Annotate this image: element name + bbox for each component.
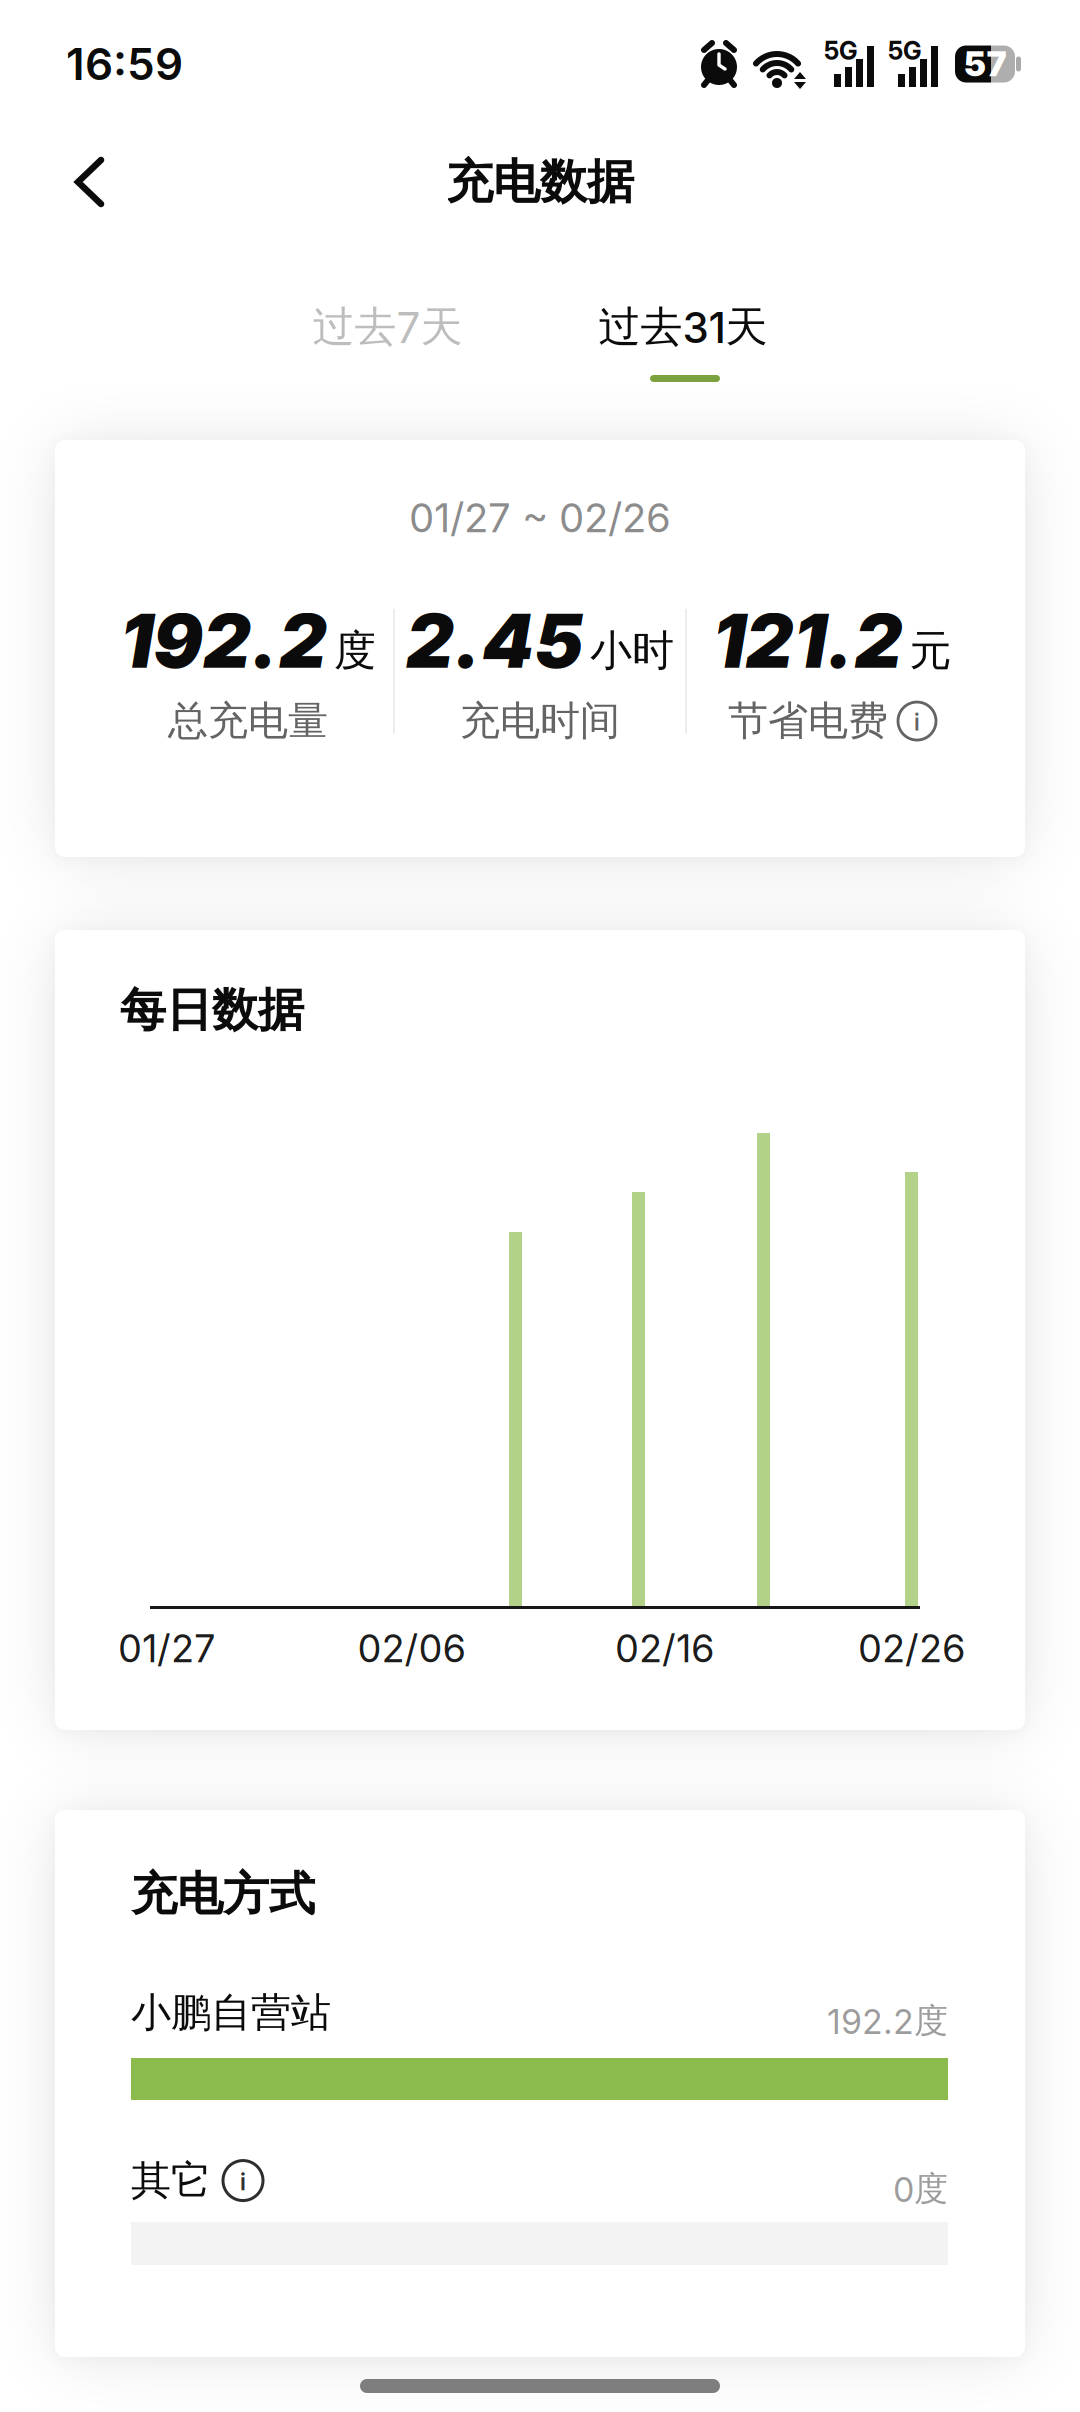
staticText: 192.2度 [827,2000,948,2042]
staticText: 小时 [590,625,674,676]
staticText: 5G [888,36,922,65]
staticText: 2.45 [406,597,583,684]
staticText: i [914,708,920,736]
staticText: 总充电量 [168,696,328,746]
staticText: 02/16 [615,1626,715,1671]
button[interactable]: 过去31天 [598,301,767,353]
button[interactable]: Back [0,155,111,209]
staticText: 5G [824,36,858,65]
staticText: 过去7天 [312,301,462,353]
button[interactable]: 过去7天 [312,301,462,353]
button[interactable]: 其它说明 [223,2161,263,2201]
staticText: 0度 [893,2168,948,2210]
staticText: 节省电费 [728,696,888,746]
staticText: 过去31天 [598,301,767,353]
staticText: 16:59 [66,38,183,90]
button[interactable]: 节省电费说明 [898,702,936,740]
staticText: 度 [334,625,376,676]
staticText: 121.2 [712,597,902,684]
staticText: 01/27 [118,1626,216,1671]
staticText: 充电方式 [131,1866,315,1922]
staticText: 57 [963,44,1006,84]
staticText: 01/27 ~ 02/26 [409,494,671,541]
staticText: 192.2 [120,597,327,684]
staticText: i [240,2167,246,2196]
staticText: 元 [909,625,951,676]
staticText: 其它 [131,2156,211,2205]
staticText: 02/06 [357,1626,466,1671]
staticText: 小鹏自营站 [131,1988,331,2037]
staticText: 02/26 [858,1626,966,1671]
staticText: 每日数据 [120,982,304,1038]
staticText: 充电数据 [446,153,634,211]
staticText: 充电时间 [460,696,620,746]
